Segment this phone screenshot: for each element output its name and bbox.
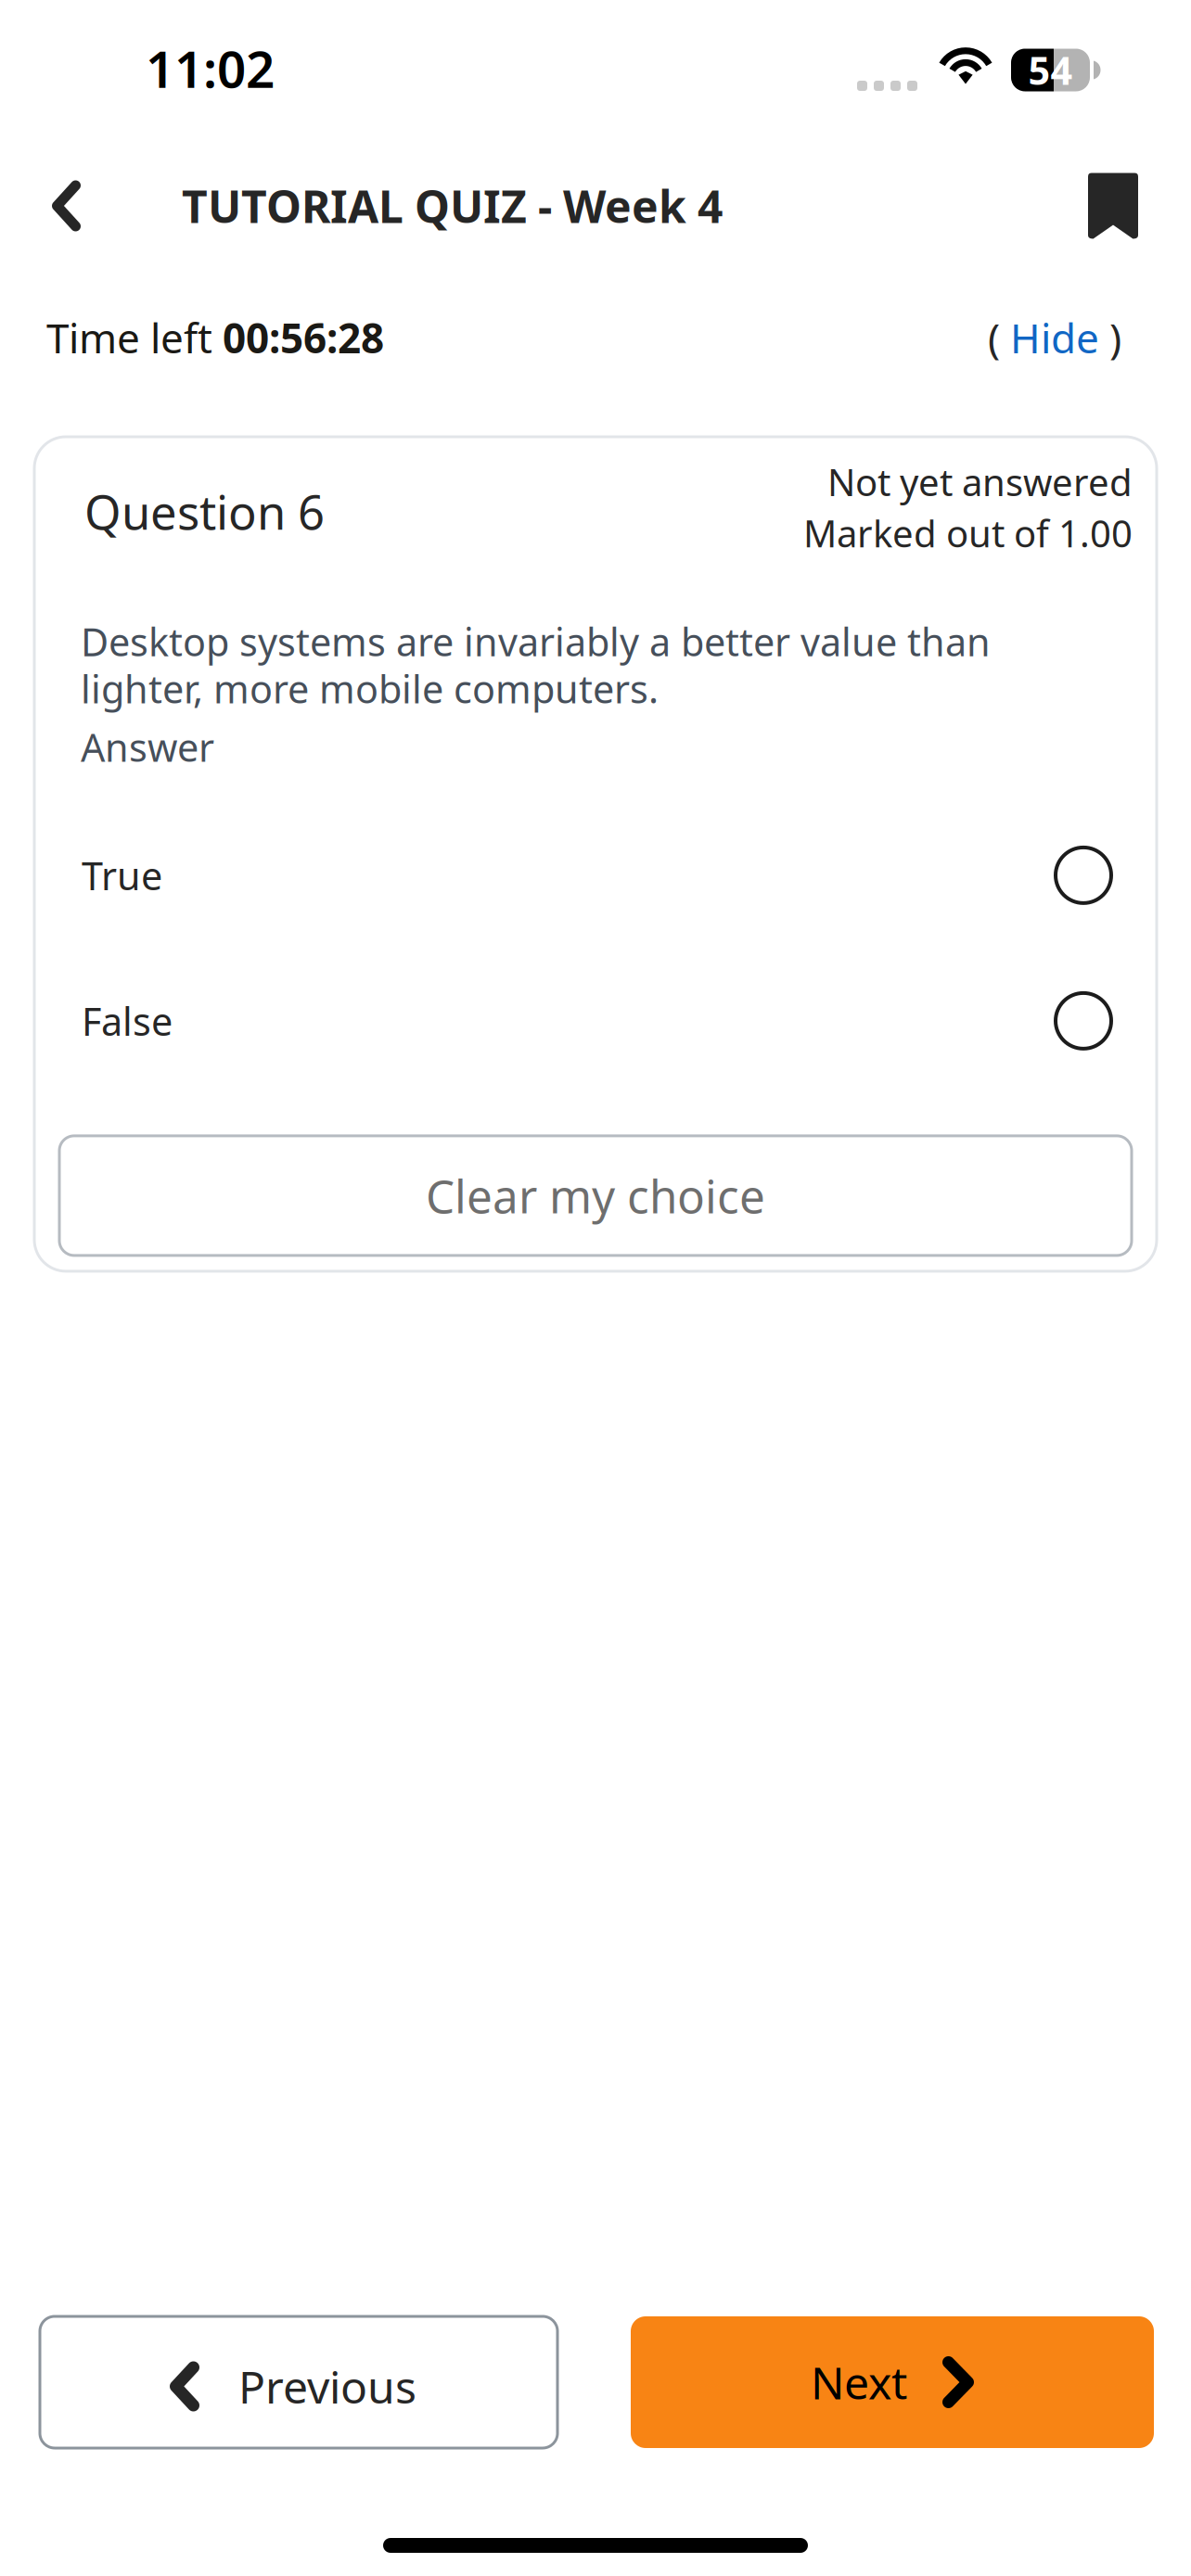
staticText: Clear my choice: [426, 1165, 765, 1226]
staticText: (: [988, 310, 1010, 365]
button[interactable]: True: [34, 847, 1157, 903]
staticText: Desktop systems are invariably a better …: [81, 616, 991, 714]
staticText: 11:02: [146, 34, 275, 102]
staticText: Answer: [81, 721, 214, 772]
staticText: Next: [811, 2353, 907, 2412]
button[interactable]: Back: [0, 155, 133, 257]
button[interactable]: False: [34, 993, 1157, 1049]
staticText: Question 6: [84, 480, 325, 543]
staticText: TUTORIAL QUIZ - Week 4: [182, 176, 723, 235]
button[interactable]: Bookmark: [1062, 155, 1164, 257]
button[interactable]: Hide: [1010, 310, 1099, 365]
staticText: 54: [1028, 45, 1073, 96]
button[interactable]: Next: [631, 2316, 1154, 2448]
staticText: Marked out of 1.00: [803, 508, 1133, 557]
staticText: Previous: [238, 2357, 416, 2416]
staticText: Not yet answered: [827, 457, 1133, 506]
staticText: False: [82, 995, 173, 1046]
staticText: Hide: [1010, 310, 1099, 365]
staticText: ): [1099, 310, 1121, 365]
button[interactable]: Clear my choice: [59, 1136, 1132, 1255]
button[interactable]: Previous: [40, 2316, 557, 2448]
staticText: Time left 00:56:28: [46, 310, 384, 365]
staticText: True: [82, 850, 162, 901]
